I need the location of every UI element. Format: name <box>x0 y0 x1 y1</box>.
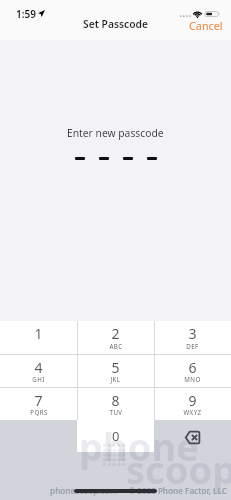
staticText: Enter new passcode <box>67 126 164 140</box>
button[interactable]: 9 <box>154 388 231 420</box>
button[interactable]: 6 <box>154 355 231 387</box>
staticText: PQRS <box>30 408 48 416</box>
staticText: 9 <box>188 391 197 410</box>
button[interactable]: 3 <box>154 321 231 354</box>
button[interactable]: 5 <box>77 355 154 387</box>
button[interactable]: 0 <box>77 420 154 452</box>
staticText: 8 <box>111 391 120 410</box>
staticText: TUV <box>109 408 123 416</box>
staticText: MNO <box>184 375 201 383</box>
staticText: 5 <box>111 358 120 377</box>
staticText: WXYZ <box>183 408 202 416</box>
button[interactable]: 2 <box>77 321 154 354</box>
staticText: JKL <box>110 375 121 383</box>
staticText: GHI <box>32 375 45 383</box>
staticText: 1:59 <box>16 7 36 21</box>
button[interactable]: Cancel <box>189 18 231 40</box>
button[interactable]: 8 <box>77 388 154 420</box>
staticText: 0 <box>112 427 120 445</box>
staticText: phone <box>79 420 199 472</box>
staticText: 6 <box>188 358 197 377</box>
button[interactable]: Delete <box>154 420 231 452</box>
staticText: 3 <box>188 324 197 343</box>
staticText: phonescoop.com - © 2023 Phone Factor, LL… <box>50 485 227 496</box>
staticText: 2 <box>111 324 120 343</box>
staticText: DEF <box>186 342 199 350</box>
staticText: Set Passcode <box>83 17 149 31</box>
staticText: scoop <box>126 443 231 495</box>
button[interactable]: 7 <box>0 388 77 420</box>
staticText: 7 <box>34 391 43 410</box>
button[interactable]: 4 <box>0 355 77 387</box>
staticText: 1 <box>34 324 43 343</box>
button[interactable]: 1 <box>0 321 77 354</box>
staticText: ABC <box>109 342 123 350</box>
staticText: Cancel <box>189 18 223 33</box>
staticText: 4 <box>34 358 43 377</box>
